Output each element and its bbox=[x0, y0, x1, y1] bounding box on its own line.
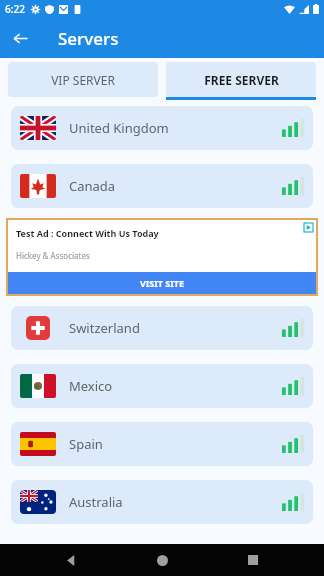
button[interactable]: Spain bbox=[11, 422, 313, 466]
button[interactable]: Mexico bbox=[11, 364, 313, 408]
staticText: Mexico bbox=[69, 377, 113, 395]
staticText: United Kingdom bbox=[69, 119, 169, 137]
staticText: Servers bbox=[58, 27, 119, 50]
button[interactable]: Switzerland bbox=[11, 306, 313, 350]
button[interactable]: Recents bbox=[233, 544, 273, 576]
staticText: VIP SERVER bbox=[51, 72, 115, 88]
button[interactable]: Back bbox=[0, 18, 40, 58]
button[interactable]: FREE SERVER bbox=[166, 62, 316, 100]
staticText: Switzerland bbox=[69, 319, 140, 337]
button[interactable]: United Kingdom bbox=[11, 106, 313, 150]
button[interactable]: Canada bbox=[11, 164, 313, 208]
staticText: FREE SERVER bbox=[204, 72, 279, 88]
staticText: 6:22 bbox=[5, 2, 25, 16]
staticText: VISIT SITE bbox=[140, 277, 185, 289]
button[interactable]: Home bbox=[142, 544, 182, 576]
staticText: Australia bbox=[69, 493, 123, 511]
staticText: Hickey & Associates bbox=[16, 250, 90, 261]
staticText: Spain bbox=[69, 435, 103, 453]
button[interactable]: Back bbox=[51, 544, 91, 576]
button[interactable]: VISIT SITE bbox=[8, 272, 316, 294]
button[interactable]: Australia bbox=[11, 480, 313, 524]
staticText: Test Ad : Connect With Us Today bbox=[16, 227, 159, 239]
staticText: Canada bbox=[69, 177, 116, 195]
button[interactable]: VIP SERVER bbox=[8, 62, 158, 100]
